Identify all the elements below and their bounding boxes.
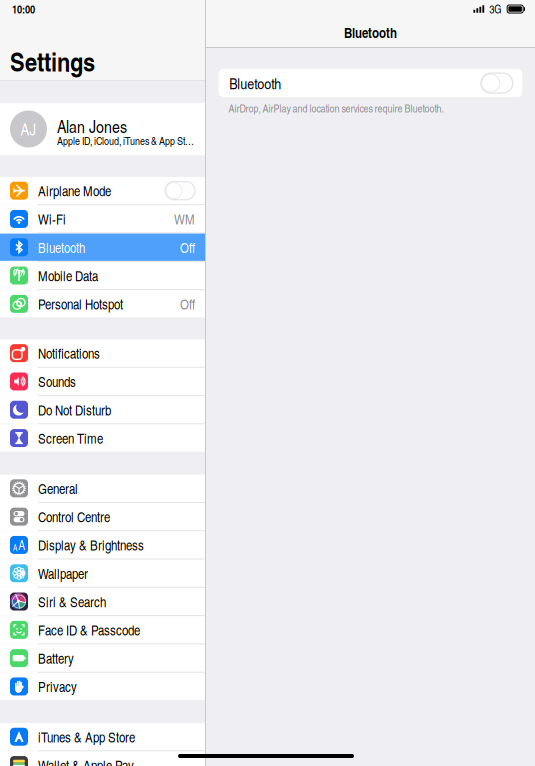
staticText: A: [18, 536, 25, 554]
staticText: Personal Hotspot: [38, 294, 123, 313]
staticText: General: [38, 479, 78, 498]
staticText: WM: [174, 209, 195, 229]
staticText: Bluetooth: [38, 238, 85, 257]
staticText: Wallpaper: [38, 564, 88, 583]
button[interactable]: Siri & Search: [0, 588, 205, 615]
staticText: iTunes & App Store: [38, 727, 135, 746]
button[interactable]: Battery: [0, 644, 205, 672]
button[interactable]: Privacy: [0, 673, 205, 700]
staticText: Siri & Search: [38, 592, 106, 611]
staticText: AirDrop, AirPlay and location services r…: [228, 101, 443, 116]
button[interactable]: AJ: [0, 103, 205, 155]
button[interactable]: Notifications: [0, 339, 205, 367]
button[interactable]: Screen Time: [0, 424, 205, 452]
staticText: Bluetooth: [344, 23, 397, 42]
staticText: Display & Brightness: [38, 535, 144, 555]
staticText: Wi-Fi: [38, 209, 66, 229]
staticText: Battery: [38, 649, 74, 668]
button[interactable]: Airplane Mode: [0, 177, 205, 204]
button[interactable]: Wallpaper: [0, 560, 205, 587]
staticText: Alan Jones: [57, 114, 127, 138]
button[interactable]: Wallet & Apple Pay: [0, 751, 205, 766]
staticText: Control Centre: [38, 507, 110, 526]
staticText: Settings: [10, 42, 95, 80]
button[interactable]: Bluetooth: [0, 234, 205, 261]
button[interactable]: iTunes & App Store: [0, 723, 205, 750]
staticText: Do Not Disturb: [38, 400, 111, 419]
staticText: AJ: [20, 118, 36, 140]
staticText: Sounds: [38, 372, 76, 391]
staticText: Off: [180, 238, 195, 257]
button[interactable]: Do Not Disturb: [0, 396, 205, 423]
button[interactable]: A: [0, 531, 205, 559]
staticText: Mobile Data: [38, 266, 98, 285]
staticText: Screen Time: [38, 428, 103, 448]
staticText: Apple ID, iCloud, iTunes & App St…: [57, 133, 194, 148]
button[interactable]: Personal Hotspot: [0, 290, 205, 317]
button[interactable]: Face ID & Passcode: [0, 616, 205, 643]
staticText: 3G: [489, 1, 501, 17]
staticText: Face ID & Passcode: [38, 620, 140, 639]
staticText: Bluetooth: [229, 73, 281, 94]
staticText: Airplane Mode: [38, 181, 111, 200]
button[interactable]: General: [0, 475, 205, 502]
button[interactable]: Wi-Fi: [0, 205, 205, 233]
button[interactable]: Control Centre: [0, 503, 205, 530]
button[interactable]: Mobile Data: [0, 262, 205, 289]
staticText: A: [13, 542, 18, 554]
staticText: Wallet & Apple Pay: [38, 755, 134, 766]
staticText: Privacy: [38, 677, 77, 696]
staticText: Off: [180, 294, 195, 313]
staticText: 10:00: [12, 1, 35, 17]
button[interactable]: Sounds: [0, 368, 205, 395]
staticText: Notifications: [38, 344, 100, 363]
button[interactable]: Bluetooth: [219, 69, 522, 97]
